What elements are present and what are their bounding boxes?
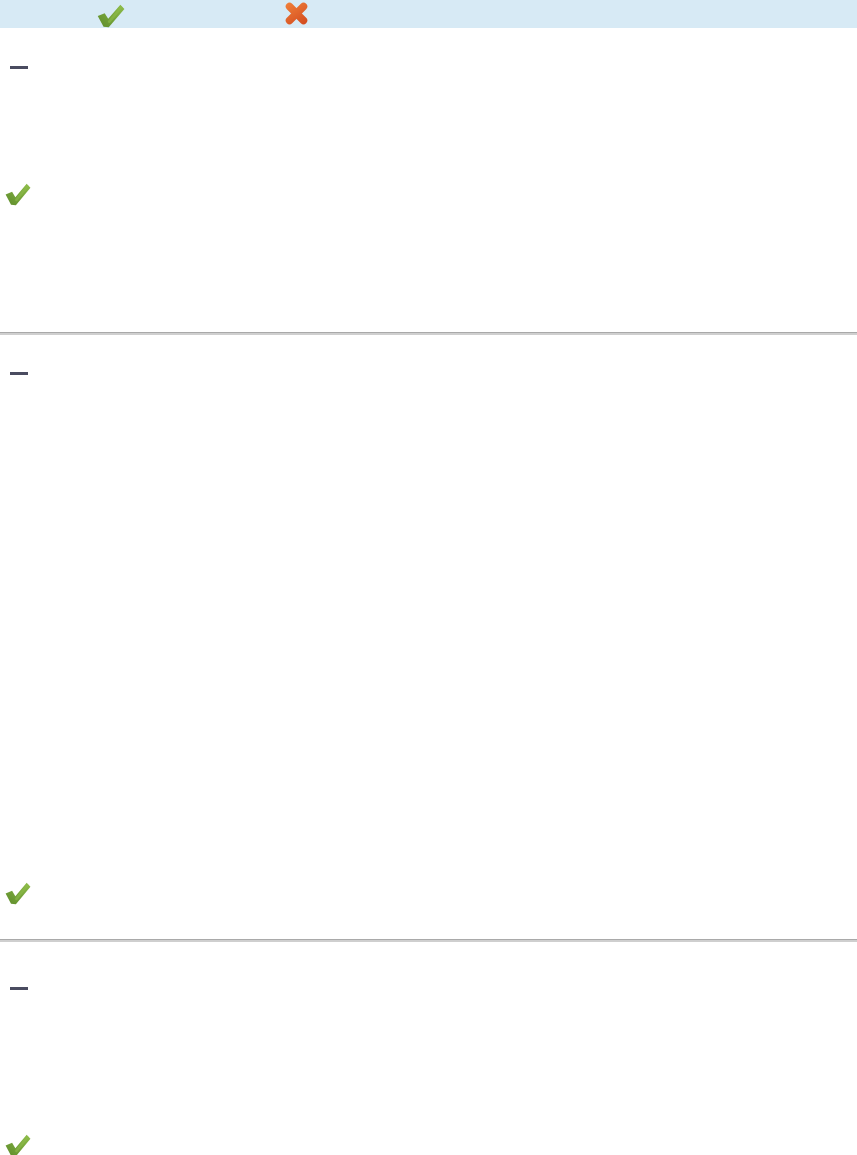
- button[interactable]: Incorrect: [284, 1, 309, 26]
- button[interactable]: Correct: [4, 1132, 31, 1155]
- button[interactable]: Correct: [4, 880, 31, 907]
- button[interactable]: Correct: [96, 2, 125, 30]
- button[interactable]: Correct: [4, 181, 31, 208]
